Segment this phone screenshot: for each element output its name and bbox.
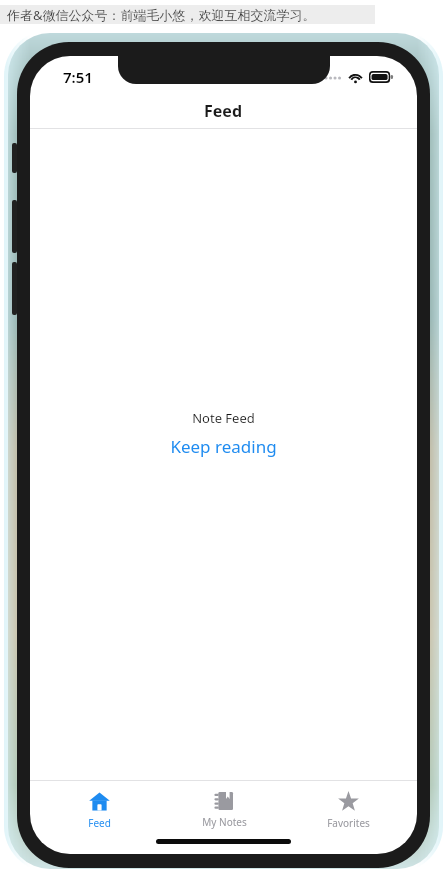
staticText: 作者&微信公众号：前端毛小悠，欢迎互相交流学习。 [7, 6, 316, 24]
button[interactable]: Favorites [293, 781, 403, 834]
staticText: Keep reading [170, 435, 277, 458]
staticText: Feed [204, 100, 243, 122]
button[interactable]: Feed [44, 781, 154, 834]
other: My Notes [214, 791, 234, 811]
staticText: Feed [88, 816, 111, 830]
other: Favorites [338, 791, 359, 812]
staticText: Favorites [327, 816, 370, 830]
staticText: Note Feed [192, 409, 255, 427]
button[interactable]: Keep reading [170, 435, 277, 458]
staticText: 7:51 [63, 67, 93, 87]
other: Feed [89, 791, 110, 812]
button[interactable]: My Notes [169, 781, 279, 834]
staticText: My Notes [202, 815, 247, 829]
